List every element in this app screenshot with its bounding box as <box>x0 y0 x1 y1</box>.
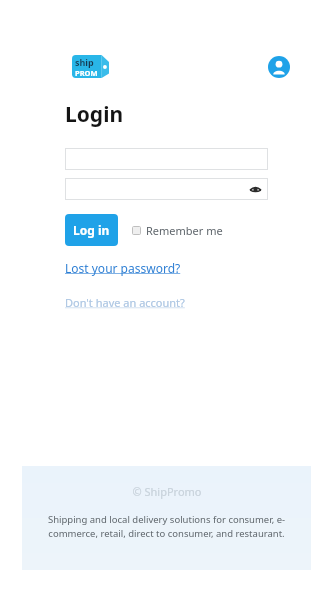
staticText: Login <box>65 100 124 129</box>
button[interactable]: Remember me <box>132 223 223 238</box>
staticText: Don't have an account? <box>65 295 185 310</box>
button[interactable]: Username or email <box>65 148 268 170</box>
button[interactable]: Account <box>268 56 290 78</box>
staticText: © ShipPromo <box>132 484 202 499</box>
button[interactable]: ShipPromo home <box>72 55 109 78</box>
staticText: Log in <box>73 222 110 238</box>
button[interactable]: Lost your password? <box>65 260 181 276</box>
staticText: Lost your password? <box>65 260 181 276</box>
button[interactable]: Password <box>65 178 268 200</box>
button[interactable]: Log in <box>65 214 118 246</box>
staticText: ship <box>75 56 94 68</box>
button[interactable]: Don't have an account? <box>65 295 185 310</box>
staticText: Remember me <box>146 223 223 238</box>
button[interactable]: Show password <box>247 181 263 197</box>
staticText: PROMO <box>75 68 100 78</box>
staticText: Shipping and local delivery solutions fo… <box>34 513 299 540</box>
